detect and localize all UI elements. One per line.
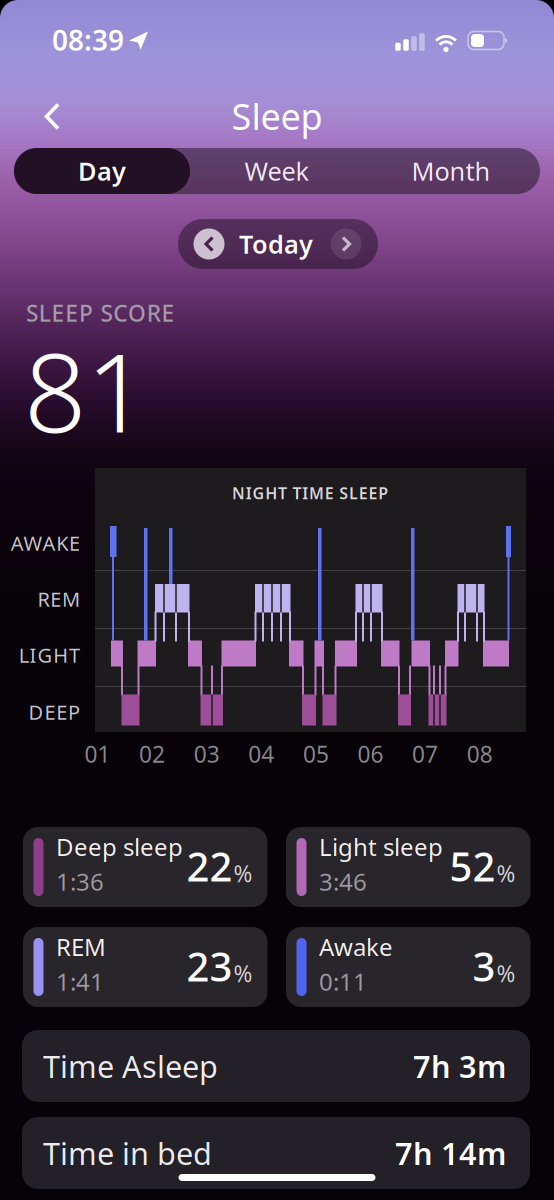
staticText: 08:39 [52, 21, 124, 59]
staticText: Time Asleep [43, 1046, 218, 1086]
staticText: Awake [319, 931, 393, 962]
staticText: NIGHT TIME SLEEP [232, 482, 388, 504]
staticText: 3 [472, 939, 495, 992]
staticText: Sleep [231, 92, 322, 140]
staticText: 1:36 [56, 865, 104, 897]
staticText: 04 [248, 739, 274, 769]
staticText: % [233, 958, 252, 989]
staticText: 22 [186, 839, 232, 892]
staticText: Deep sleep [56, 831, 183, 862]
staticText: 03 [194, 739, 220, 769]
staticText: 08 [467, 739, 493, 769]
staticText: 81 [24, 317, 148, 463]
staticText: 3:46 [319, 865, 367, 897]
staticText: REM [56, 931, 106, 962]
staticText: 7h 3m [413, 1046, 506, 1086]
staticText: DEEP [29, 699, 80, 725]
staticText: SLEEP SCORE [26, 298, 174, 328]
staticText: Today [239, 227, 313, 261]
staticText: 7h 14m [395, 1133, 506, 1173]
staticText: Time in bed [43, 1133, 212, 1173]
staticText: 01 [84, 739, 110, 769]
staticText: REM [37, 586, 80, 612]
staticText: % [233, 858, 252, 889]
staticText: Day [78, 154, 126, 188]
staticText: AWAKE [11, 530, 80, 556]
staticText: 06 [357, 739, 383, 769]
staticText: % [496, 858, 515, 889]
staticText: 07 [412, 739, 438, 769]
staticText: 05 [303, 739, 329, 769]
staticText: LIGHT [19, 642, 80, 668]
staticText: 02 [139, 739, 165, 769]
staticText: % [496, 958, 515, 989]
staticText: Month [411, 154, 490, 188]
staticText: 0:11 [319, 965, 367, 997]
staticText: Light sleep [319, 831, 443, 862]
staticText: 52 [449, 839, 495, 892]
staticText: Week [244, 154, 309, 188]
staticText: 1:41 [56, 965, 104, 997]
staticText: 23 [186, 939, 232, 992]
